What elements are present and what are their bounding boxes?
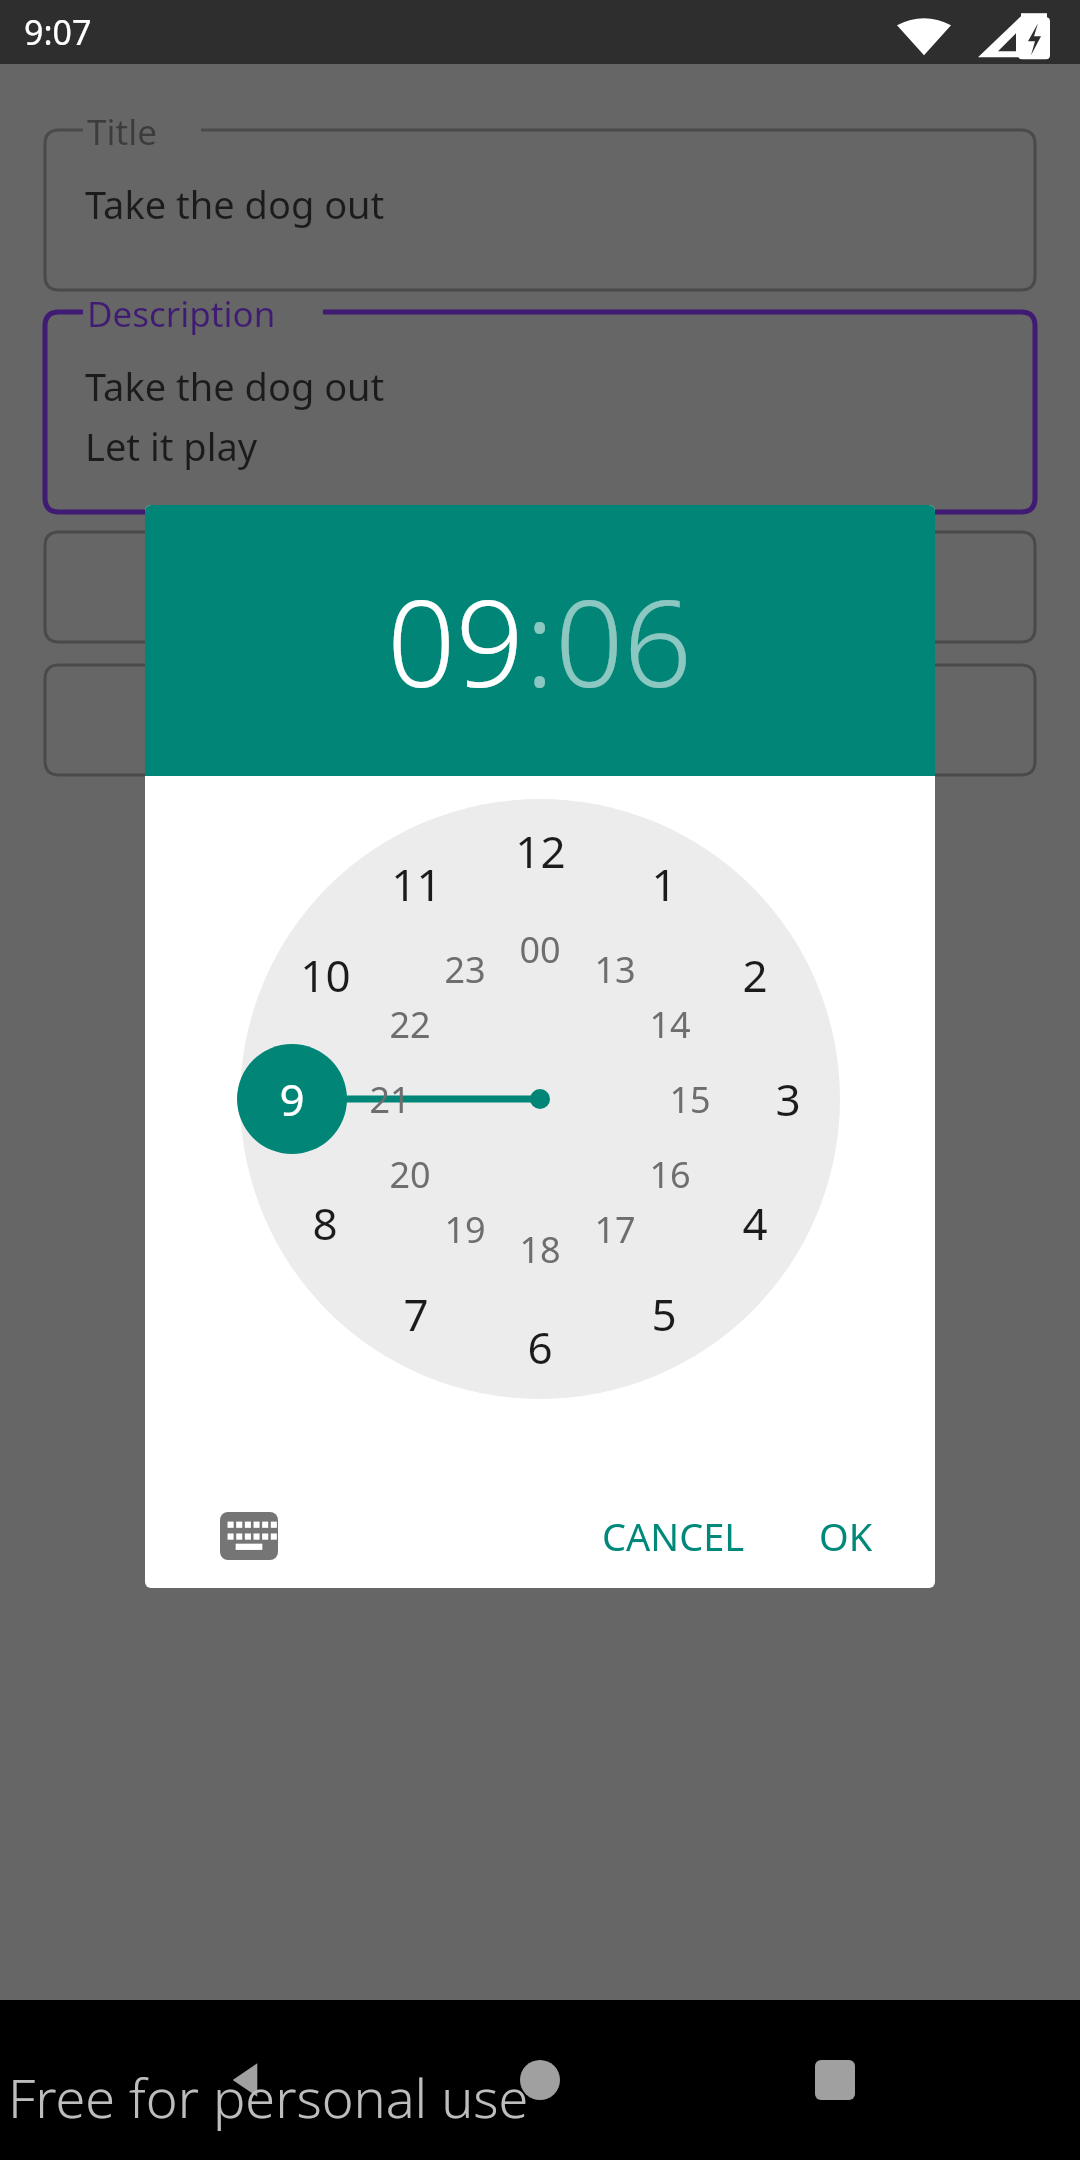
staticText: 10 — [300, 945, 351, 1005]
staticText: 14 — [649, 1000, 691, 1049]
button[interactable]: 6 — [500, 1313, 580, 1381]
button[interactable]: 1 — [624, 850, 704, 918]
button[interactable]: 7 — [376, 1280, 456, 1348]
staticText: 23 — [444, 945, 486, 994]
button[interactable]: 22 — [370, 996, 450, 1052]
staticText: 16 — [649, 1150, 691, 1199]
button[interactable]: 14 — [630, 996, 710, 1052]
button[interactable]: 5 — [624, 1280, 704, 1348]
button[interactable]: 12 — [500, 817, 580, 885]
staticText: 09 — [387, 559, 525, 722]
button[interactable]: 3 — [748, 1065, 828, 1133]
button[interactable]: Title — [45, 130, 1035, 290]
staticText: 17 — [594, 1205, 636, 1254]
staticText: 2 — [742, 945, 768, 1005]
button[interactable] — [45, 532, 1035, 642]
staticText: 18 — [519, 1225, 561, 1274]
staticText: 15 — [669, 1075, 711, 1124]
staticText: 9 — [279, 1069, 305, 1129]
staticText: Title — [87, 108, 157, 156]
button[interactable]: 21 — [350, 1071, 430, 1127]
button[interactable] — [45, 665, 1035, 775]
staticText: 6 — [527, 1317, 553, 1377]
staticText: Description — [87, 290, 276, 338]
staticText: Let it play — [85, 420, 258, 472]
button[interactable]: Description — [45, 312, 1035, 512]
button[interactable]: OK — [797, 1494, 895, 1578]
staticText: 5 — [651, 1284, 677, 1344]
button[interactable]: 8 — [285, 1189, 365, 1257]
button[interactable]: 15 — [650, 1071, 730, 1127]
staticText: 9:07 — [24, 9, 92, 55]
staticText: 11 — [391, 854, 442, 914]
button[interactable]: CANCEL — [580, 1494, 767, 1578]
button[interactable]: 13 — [575, 941, 655, 997]
button[interactable]: 06 — [555, 559, 693, 722]
button[interactable]: 2 — [715, 941, 795, 1009]
staticText: : — [525, 559, 555, 722]
staticText: 12 — [515, 821, 566, 881]
staticText: 8 — [312, 1193, 338, 1253]
button[interactable]: 4 — [715, 1189, 795, 1257]
button[interactable]: 16 — [630, 1146, 710, 1202]
staticText: 1 — [651, 854, 677, 914]
button[interactable]: Home — [485, 2025, 595, 2135]
staticText: 13 — [594, 945, 636, 994]
button[interactable]: 11 — [376, 850, 456, 918]
button[interactable]: Switch to keyboard input — [209, 1496, 289, 1576]
button[interactable]: 00 — [500, 921, 580, 977]
button[interactable]: 20 — [370, 1146, 450, 1202]
staticText: CANCEL — [602, 1510, 745, 1562]
staticText: Free for personal use — [8, 2060, 529, 2134]
staticText: 19 — [444, 1205, 486, 1254]
button[interactable]: 10 — [285, 941, 365, 1009]
staticText: 7 — [403, 1284, 429, 1344]
button[interactable]: Back — [190, 2025, 300, 2135]
staticText: 21 — [369, 1075, 411, 1124]
button[interactable]: 19 — [425, 1201, 505, 1257]
staticText: 4 — [742, 1193, 768, 1253]
button[interactable]: 18 — [500, 1221, 580, 1277]
staticText: Take the dog out — [85, 178, 385, 230]
staticText: 22 — [389, 1000, 431, 1049]
staticText: 20 — [389, 1150, 431, 1199]
staticText: 00 — [519, 925, 561, 974]
staticText: OK — [819, 1510, 873, 1562]
staticText: 3 — [775, 1069, 801, 1129]
button[interactable]: 17 — [575, 1201, 655, 1257]
button[interactable]: 09 — [387, 559, 525, 722]
button[interactable]: Recents — [780, 2025, 890, 2135]
button[interactable]: 23 — [425, 941, 505, 997]
button[interactable]: 9 — [252, 1065, 332, 1133]
staticText: 06 — [555, 559, 693, 722]
staticText: Take the dog out — [85, 360, 385, 412]
